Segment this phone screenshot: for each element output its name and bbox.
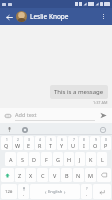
button[interactable]: J bbox=[75, 152, 85, 166]
staticText: Z bbox=[18, 172, 22, 179]
button[interactable]: H bbox=[64, 152, 74, 166]
staticText: S bbox=[21, 156, 25, 163]
button[interactable]: 5 bbox=[46, 136, 56, 150]
button[interactable]: Google search bbox=[20, 125, 29, 134]
button[interactable]: 8 bbox=[79, 136, 89, 150]
button[interactable]: Contact photo bbox=[16, 11, 27, 22]
button[interactable]: S bbox=[17, 152, 28, 166]
staticText: 7 bbox=[73, 138, 75, 142]
staticText: B bbox=[65, 172, 69, 179]
button[interactable]: ‹ bbox=[30, 184, 80, 199]
staticText: U bbox=[71, 142, 76, 149]
button[interactable]: Z bbox=[15, 168, 25, 182]
staticText: 9 bbox=[95, 138, 97, 142]
staticText: 0 bbox=[105, 138, 107, 142]
staticText: 8 bbox=[83, 138, 85, 142]
button[interactable]: 1 bbox=[1, 136, 12, 150]
staticText: D bbox=[32, 156, 37, 163]
button[interactable]: X bbox=[26, 168, 36, 182]
button[interactable]: K bbox=[86, 152, 96, 166]
staticText: L bbox=[101, 156, 104, 163]
staticText: C bbox=[41, 172, 45, 179]
button[interactable]: 9 bbox=[90, 136, 100, 150]
staticText: 1:37 AM bbox=[93, 100, 108, 105]
staticText: ? bbox=[86, 186, 88, 191]
button[interactable]: This is a message bbox=[50, 85, 108, 99]
staticText: This is a message bbox=[54, 88, 104, 96]
staticText: Q bbox=[4, 142, 9, 149]
staticText: H bbox=[67, 156, 72, 163]
staticText: . bbox=[86, 191, 88, 197]
staticText: 5 bbox=[50, 138, 52, 142]
staticText: Leslie Knope bbox=[30, 12, 98, 21]
staticText: Add text bbox=[15, 111, 37, 118]
button[interactable]: Attach bbox=[3, 111, 13, 121]
staticText: 2 bbox=[17, 138, 19, 142]
button[interactable]: G bbox=[53, 152, 63, 166]
button[interactable]: Backspace bbox=[97, 168, 111, 182]
button[interactable]: A bbox=[5, 152, 16, 166]
button[interactable]: , bbox=[18, 184, 29, 199]
staticText: 4 bbox=[39, 138, 41, 142]
staticText: F bbox=[45, 156, 48, 163]
staticText: V bbox=[53, 172, 57, 179]
button[interactable]: 2 bbox=[13, 136, 23, 150]
staticText: M bbox=[88, 172, 93, 179]
staticText: , bbox=[23, 191, 25, 197]
button[interactable]: D bbox=[29, 152, 40, 166]
staticText: X bbox=[29, 172, 33, 179]
button[interactable]: 3 bbox=[24, 136, 34, 150]
staticText: E bbox=[27, 142, 31, 149]
button[interactable]: 6 bbox=[57, 136, 67, 150]
staticText: T bbox=[49, 142, 53, 149]
button[interactable]: More options bbox=[98, 11, 109, 22]
button[interactable]: F bbox=[41, 152, 52, 166]
staticText: ‹ bbox=[45, 189, 47, 195]
button[interactable]: L bbox=[97, 152, 107, 166]
staticText: A bbox=[9, 156, 13, 163]
button[interactable]: Shift bbox=[1, 168, 14, 182]
staticText: 12# bbox=[5, 189, 13, 195]
button[interactable]: Voice input bbox=[5, 125, 14, 134]
staticText: J bbox=[79, 156, 81, 163]
staticText: I bbox=[83, 142, 85, 149]
button[interactable]: B bbox=[61, 168, 72, 182]
staticText: G bbox=[56, 156, 61, 163]
button[interactable]: 4 bbox=[35, 136, 45, 150]
staticText: W bbox=[15, 142, 21, 149]
staticText: › bbox=[64, 189, 66, 195]
button[interactable]: Back bbox=[3, 11, 15, 23]
staticText: Y bbox=[60, 142, 64, 149]
button[interactable]: M bbox=[85, 168, 96, 182]
button[interactable]: V bbox=[49, 168, 60, 182]
button[interactable]: Emoji bbox=[98, 125, 107, 134]
staticText: 1 bbox=[6, 138, 8, 142]
staticText: P bbox=[104, 142, 108, 149]
button[interactable]: 12# bbox=[1, 184, 17, 199]
button[interactable]: N bbox=[73, 168, 84, 182]
staticText: N bbox=[76, 172, 81, 179]
button[interactable]: 7 bbox=[68, 136, 78, 150]
button[interactable]: Enter bbox=[93, 184, 111, 199]
button[interactable]: Send bbox=[98, 110, 109, 121]
staticText: O bbox=[93, 142, 98, 149]
staticText: K bbox=[89, 156, 93, 163]
staticText: R bbox=[38, 142, 42, 149]
staticText: 3 bbox=[28, 138, 30, 142]
staticText: English bbox=[48, 189, 63, 195]
button[interactable]: 0 bbox=[101, 136, 111, 150]
button[interactable]: C bbox=[37, 168, 48, 182]
staticText: 6 bbox=[61, 138, 63, 142]
button[interactable]: ? bbox=[81, 184, 92, 199]
